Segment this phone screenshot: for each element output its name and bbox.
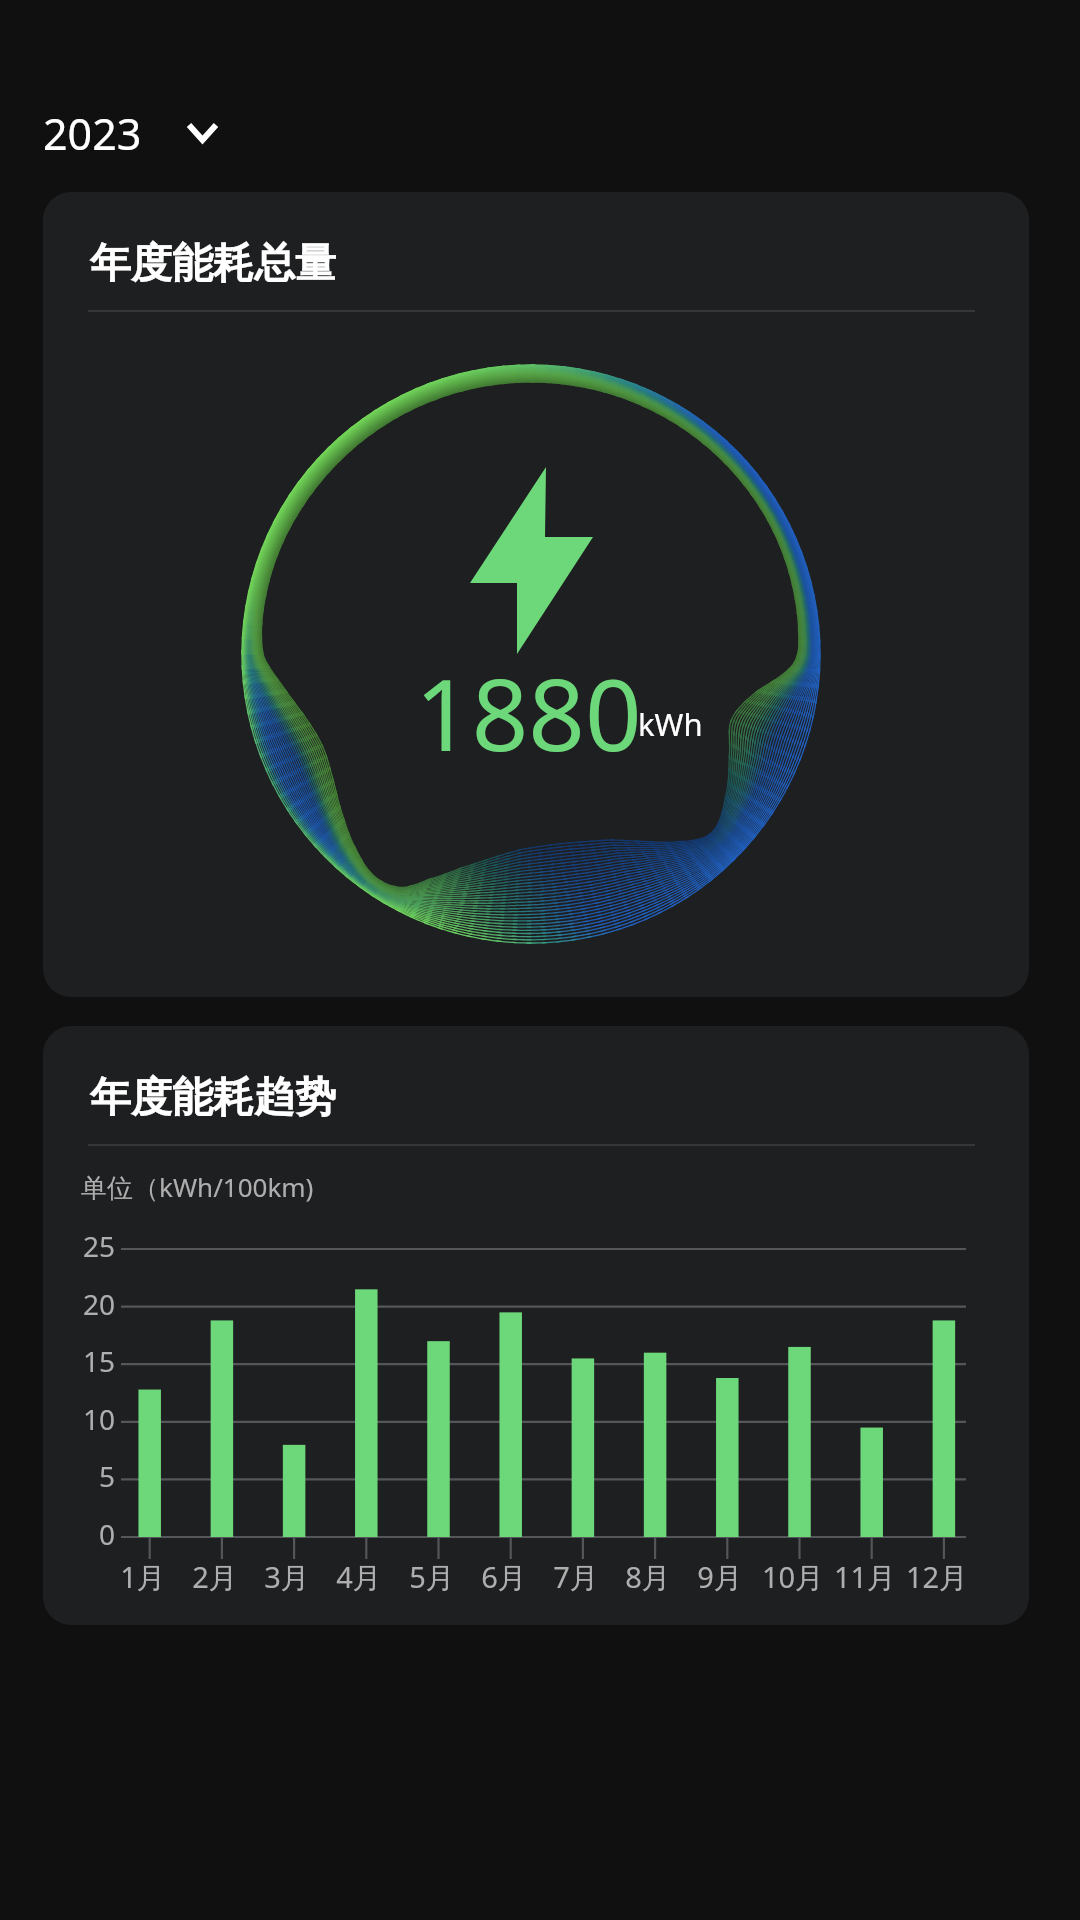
- button[interactable]: 2023: [43, 104, 219, 163]
- staticText: 6月: [454, 1557, 554, 1597]
- staticText: 1880: [415, 645, 642, 780]
- staticText: 8月: [598, 1557, 698, 1597]
- staticText: 年度能耗总量: [90, 238, 336, 290]
- staticText: 2月: [165, 1557, 265, 1597]
- staticText: 0: [45, 1515, 115, 1553]
- staticText: 单位（kWh/100km): [81, 1169, 314, 1205]
- staticText: 11月: [815, 1557, 915, 1597]
- staticText: 1月: [93, 1557, 193, 1597]
- staticText: 7月: [526, 1557, 626, 1597]
- staticText: 5: [45, 1457, 115, 1495]
- staticText: kWh: [638, 703, 703, 745]
- staticText: 2023: [43, 104, 142, 163]
- staticText: 12月: [887, 1557, 987, 1597]
- staticText: 年度能耗趋势: [90, 1072, 336, 1124]
- staticText: 10月: [743, 1557, 843, 1597]
- staticText: 10: [45, 1400, 115, 1438]
- staticText: 5月: [382, 1557, 482, 1597]
- staticText: 20: [45, 1285, 115, 1323]
- staticText: 25: [45, 1227, 115, 1265]
- staticText: 9月: [670, 1557, 770, 1597]
- staticText: 15: [45, 1342, 115, 1380]
- staticText: 3月: [237, 1557, 337, 1597]
- staticText: 4月: [309, 1557, 409, 1597]
